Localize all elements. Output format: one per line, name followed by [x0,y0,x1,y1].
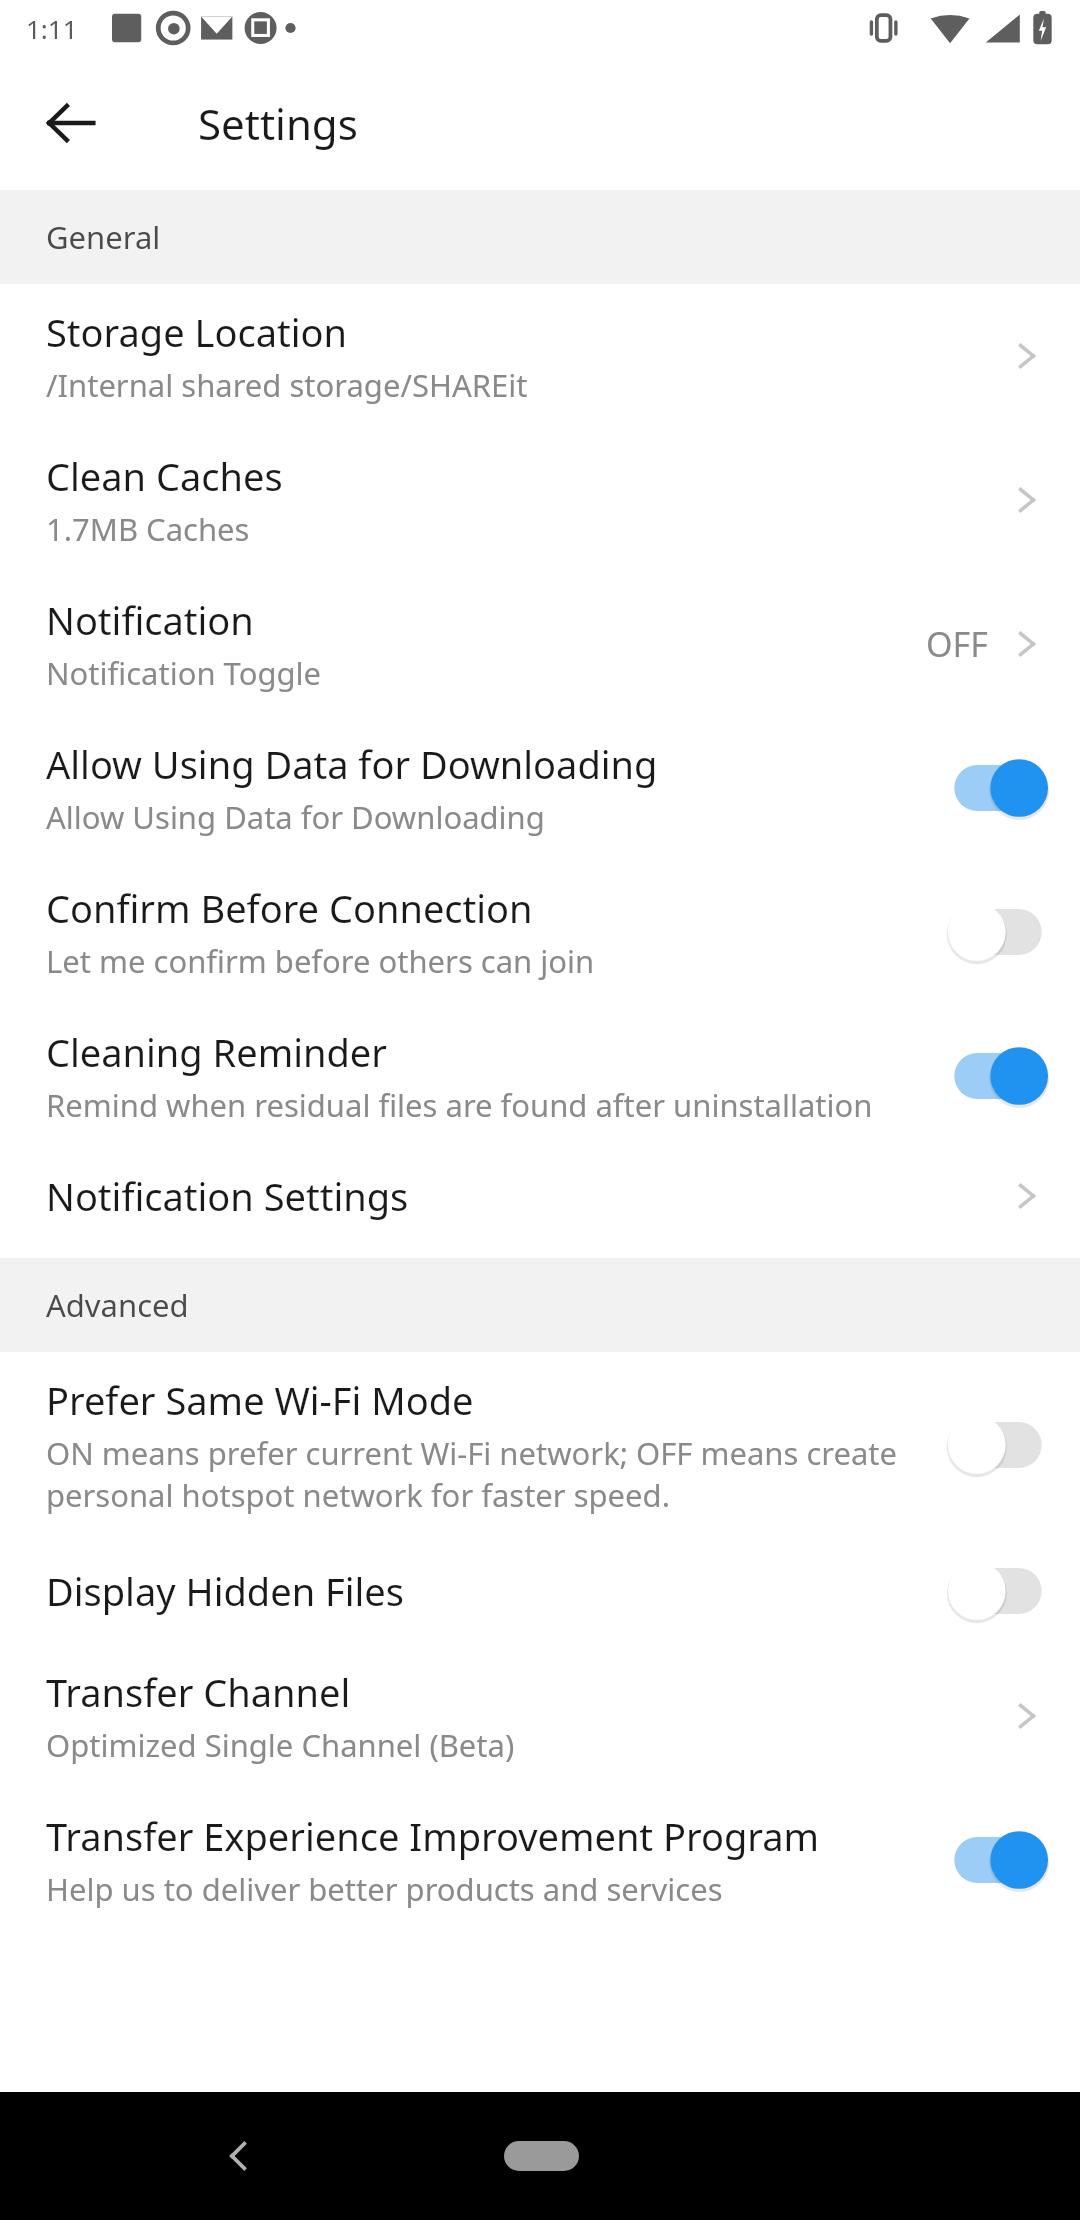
button[interactable]: Toggle off [946,1560,1050,1622]
staticText: Transfer Channel [46,1666,351,1718]
button[interactable]: Toggle off [946,1414,1050,1476]
button[interactable]: Allow Using Data for Downloading [0,716,1080,860]
staticText: Settings [198,95,358,152]
staticText: Help us to deliver better products and s… [46,1868,723,1910]
staticText: Optimized Single Channel (Beta) [46,1724,515,1766]
staticText: Allow Using Data for Downloading [46,796,545,838]
staticText: Display Hidden Files [46,1565,404,1617]
button[interactable]: Toggle off [946,901,1050,963]
staticText: OFF [926,621,988,667]
staticText: 1.7MB Caches [46,508,250,550]
staticText: Notification Toggle [46,652,322,694]
button[interactable]: Cleaning Reminder [0,1004,1080,1148]
button[interactable]: Home [466,2126,616,2186]
button[interactable]: Transfer Experience Improvement Program [0,1788,1080,1932]
staticText: 1:11 [26,11,78,46]
staticText: Advanced [46,1284,189,1326]
button[interactable]: Display Hidden Files [0,1538,1080,1644]
staticText: Cleaning Reminder [46,1026,387,1078]
staticText: ON means prefer current Wi-Fi network; O… [46,1432,922,1516]
button[interactable]: Back [180,2097,298,2215]
staticText: Notification Settings [46,1170,409,1222]
button[interactable]: Prefer Same Wi-Fi Mode [0,1352,1080,1538]
staticText: Storage Location [46,306,347,358]
staticText: Clean Caches [46,450,283,502]
button[interactable]: Storage Location [0,284,1080,428]
button[interactable]: Clean Caches [0,428,1080,572]
other: Open [1004,1173,1050,1219]
staticText: Let me confirm before others can join [46,940,595,982]
other: Open [1004,333,1050,379]
button[interactable]: Notification Settings [0,1148,1080,1244]
button[interactable]: Toggle on [946,1829,1050,1891]
staticText: Allow Using Data for Downloading [46,738,658,790]
staticText: Transfer Experience Improvement Program [46,1810,820,1862]
button[interactable]: Confirm Before Connection [0,860,1080,1004]
button[interactable]: Toggle on [946,1045,1050,1107]
staticText: Remind when residual files are found aft… [46,1084,873,1126]
other: Open [1004,1693,1050,1739]
staticText: Prefer Same Wi-Fi Mode [46,1374,474,1426]
staticText: Confirm Before Connection [46,882,533,934]
staticText: General [46,216,161,258]
other: Open [1004,477,1050,523]
button[interactable]: Back [20,72,122,174]
button[interactable]: Toggle on [946,757,1050,819]
button[interactable]: Notification [0,572,1080,716]
other: Open [1004,621,1050,667]
button[interactable]: Transfer Channel [0,1644,1080,1788]
staticText: /Internal shared storage/SHAREit [46,364,528,406]
staticText: Notification [46,594,254,646]
